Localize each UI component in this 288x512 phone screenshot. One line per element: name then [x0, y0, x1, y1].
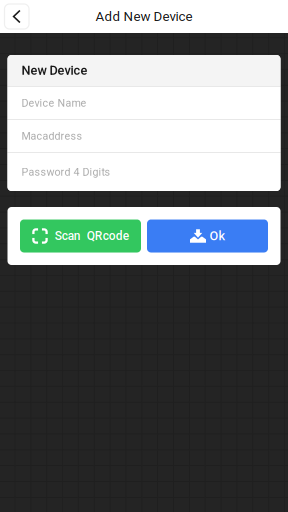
- staticText: Device Name: [21, 97, 86, 109]
- button[interactable]: Ok: [147, 219, 268, 252]
- button[interactable]: Password 4 Digits: [7, 153, 280, 191]
- staticText: Scan QRcode: [55, 229, 129, 243]
- button[interactable]: Back: [4, 4, 29, 29]
- staticText: Add New Device: [95, 9, 192, 24]
- staticText: Ok: [209, 229, 225, 243]
- staticText: Password 4 Digits: [21, 166, 110, 178]
- button[interactable]: Scan QRcode: [20, 219, 141, 252]
- button[interactable]: Device Name: [7, 87, 280, 119]
- staticText: Macaddress: [21, 130, 82, 142]
- button[interactable]: Macaddress: [7, 120, 280, 152]
- staticText: New Device: [21, 63, 87, 78]
